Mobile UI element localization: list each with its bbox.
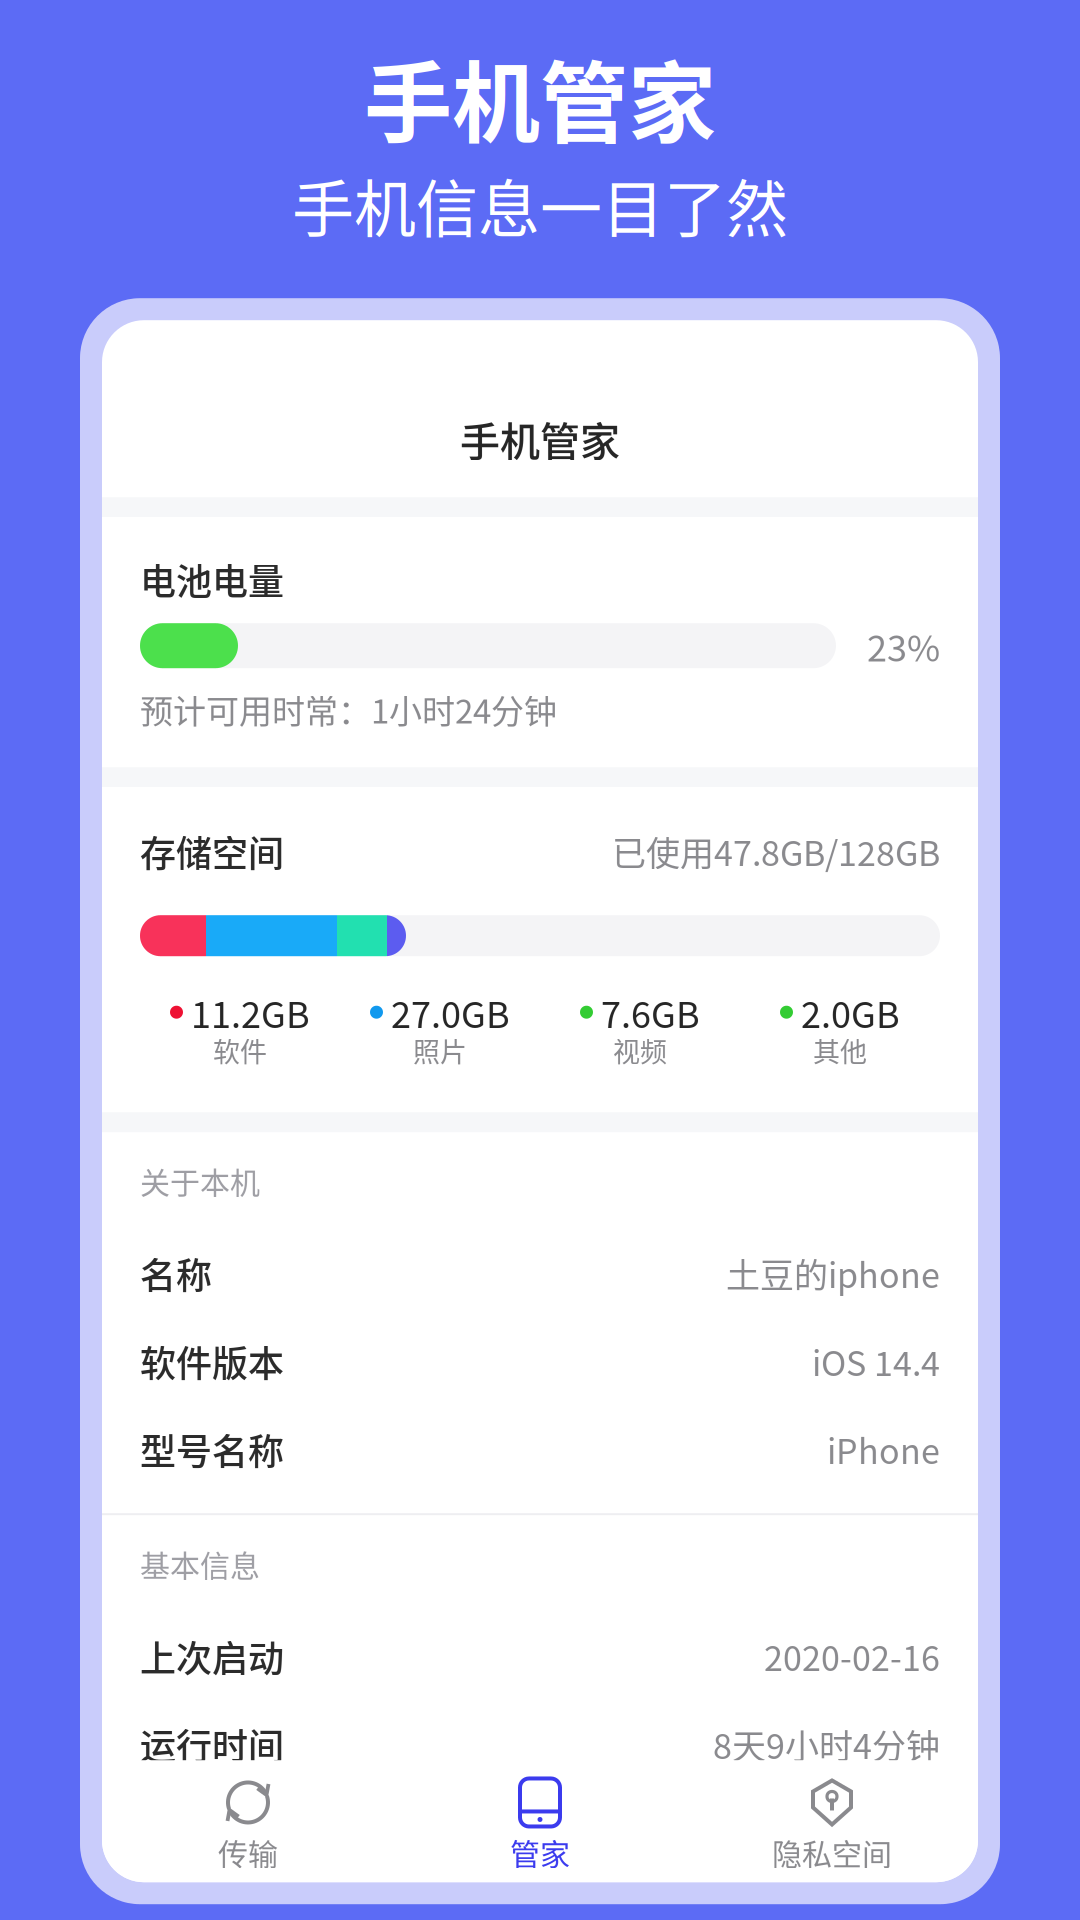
staticText: iPhone xyxy=(827,1425,940,1474)
staticText: 运行时间 xyxy=(140,1718,284,1770)
staticText: 名称 xyxy=(140,1247,212,1299)
staticText: 基本信息 xyxy=(140,1542,260,1585)
button[interactable]: 传输 xyxy=(102,1776,394,1874)
staticText: 7.6GB xyxy=(601,986,700,1038)
staticText: 视频 xyxy=(613,1031,667,1070)
staticText: 预计可用时常：1小时24分钟 xyxy=(140,685,557,733)
staticText: iOS 14.4 xyxy=(812,1337,940,1386)
staticText: 其他 xyxy=(813,1031,867,1070)
button[interactable]: 运行时间 xyxy=(102,1700,978,1788)
staticText: 型号名称 xyxy=(140,1423,284,1475)
staticText: 隐私空间 xyxy=(772,1830,892,1874)
staticText: 上次启动 xyxy=(140,1630,284,1682)
staticText: 管家 xyxy=(510,1830,570,1874)
staticText: 手机管家 xyxy=(364,33,716,160)
staticText: 2.0GB xyxy=(801,986,900,1038)
staticText: 照片 xyxy=(413,1031,467,1070)
staticText: 11.2GB xyxy=(191,986,310,1038)
button[interactable]: 名称 xyxy=(102,1229,978,1317)
staticText: 软件 xyxy=(213,1031,267,1070)
button[interactable]: 软件版本 xyxy=(102,1317,978,1405)
staticText: 23% xyxy=(867,620,940,672)
staticText: 电池电量 xyxy=(140,553,284,605)
staticText: 8天9小时4分钟 xyxy=(713,1720,940,1769)
staticText: 已使用47.8GB/128GB xyxy=(612,827,940,876)
staticText: 手机信息一目了然 xyxy=(292,160,788,250)
staticText: 手机管家 xyxy=(460,410,620,468)
staticText: 传输 xyxy=(218,1830,278,1874)
button[interactable]: 上次启动 xyxy=(102,1612,978,1700)
staticText: 存储空间 xyxy=(140,825,284,877)
button[interactable]: 隐私空间 xyxy=(686,1776,978,1874)
staticText: 土豆的iphone xyxy=(726,1249,940,1298)
button[interactable]: 型号名称 xyxy=(102,1405,978,1493)
staticText: 27.0GB xyxy=(391,986,510,1038)
button[interactable]: 管家 xyxy=(394,1776,686,1874)
staticText: 2020-02-16 xyxy=(764,1632,940,1681)
staticText: 软件版本 xyxy=(140,1335,284,1387)
staticText: 关于本机 xyxy=(140,1159,260,1202)
